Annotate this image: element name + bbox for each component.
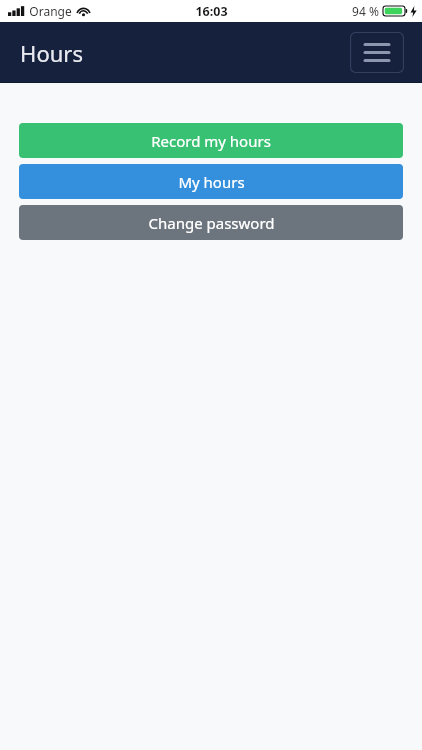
- staticText: Record my hours: [151, 131, 271, 151]
- button[interactable]: My hours: [19, 164, 403, 199]
- staticText: 94 %: [352, 3, 379, 19]
- staticText: Change password: [148, 213, 275, 233]
- staticText: 16:03: [195, 3, 228, 20]
- button[interactable]: Change password: [19, 205, 403, 240]
- staticText: Orange: [29, 3, 72, 19]
- staticText: My hours: [178, 172, 245, 192]
- staticText: Hours: [20, 38, 83, 68]
- button[interactable]: Open navigation menu: [350, 32, 404, 73]
- button[interactable]: Record my hours: [19, 123, 403, 158]
